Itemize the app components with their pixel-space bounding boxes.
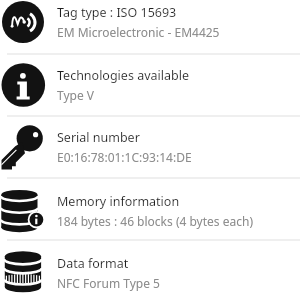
button[interactable]: Technologies	[0, 54, 300, 116]
button[interactable]: Memory	[0, 180, 300, 242]
other: Data format	[0, 242, 46, 300]
other: Memory	[0, 180, 46, 242]
staticText: 184 bytes : 46 blocks (4 bytes each)	[57, 213, 253, 229]
staticText: Type V	[57, 87, 95, 103]
button[interactable]: NFC tag type	[0, 0, 300, 53]
staticText: Data format	[57, 255, 129, 272]
staticText: EM Microelectronic - EM4425	[57, 24, 220, 40]
other: NFC tag type	[0, 0, 46, 53]
button[interactable]: Data format	[0, 242, 300, 300]
staticText: Serial number	[57, 129, 140, 146]
staticText: Technologies available	[57, 67, 189, 84]
staticText: Memory information	[57, 193, 180, 210]
staticText: Tag type : ISO 15693	[57, 4, 177, 21]
other: Technologies	[0, 54, 46, 116]
staticText: E0:16:78:01:1C:93:14:DE	[57, 149, 192, 165]
other: Serial number	[0, 116, 46, 178]
staticText: NFC Forum Type 5	[57, 275, 160, 291]
button[interactable]: Serial number	[0, 116, 300, 178]
